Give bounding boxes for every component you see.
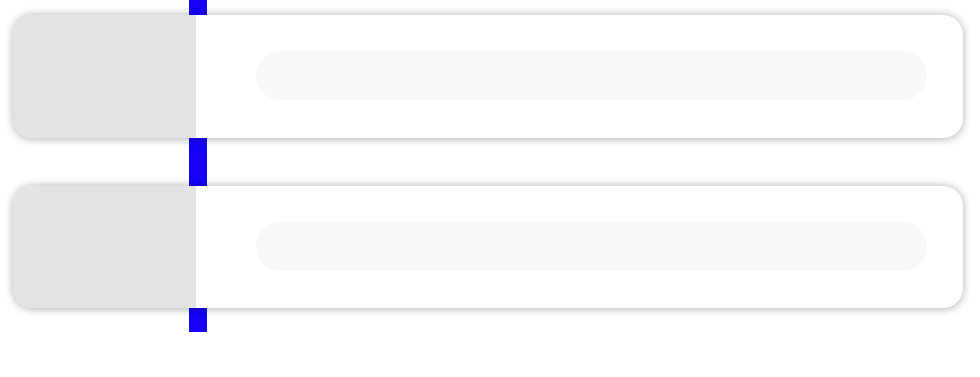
button[interactable]: Loading list item [13, 186, 963, 308]
button[interactable]: Loading list item [13, 15, 963, 138]
